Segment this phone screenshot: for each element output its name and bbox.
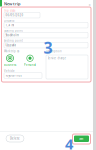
staticText: Personal xyxy=(24,63,36,67)
staticText: Save xyxy=(79,137,84,140)
button[interactable]: Delete xyxy=(6,135,24,142)
staticText: Work trip as xyxy=(4,49,19,53)
staticText: 1,4 mi xyxy=(5,23,14,27)
staticText: 06/05/2020 xyxy=(5,13,23,17)
staticText: 4 xyxy=(65,134,73,146)
staticText: Toyota Prius xyxy=(5,74,21,77)
staticText: New trip xyxy=(4,1,21,6)
staticText: Stockholm xyxy=(5,33,18,37)
button[interactable]: Save xyxy=(74,135,89,142)
button[interactable]: Close xyxy=(87,2,92,7)
staticText: Ending point xyxy=(4,39,23,42)
staticText: Description xyxy=(46,49,62,53)
staticText: Vehicle xyxy=(4,69,15,73)
staticText: Starting point xyxy=(4,29,23,32)
staticText: Distance xyxy=(4,19,15,22)
staticText: Business xyxy=(4,63,16,67)
staticText: 3 xyxy=(43,37,52,50)
staticText: Service charge xyxy=(48,56,67,60)
button[interactable]: Personal xyxy=(23,54,37,66)
staticText: × xyxy=(88,2,90,7)
staticText: Trip date xyxy=(4,9,16,12)
staticText: Uppsala xyxy=(5,43,15,47)
button[interactable]: Business xyxy=(3,54,17,66)
staticText: Delete xyxy=(10,137,20,140)
